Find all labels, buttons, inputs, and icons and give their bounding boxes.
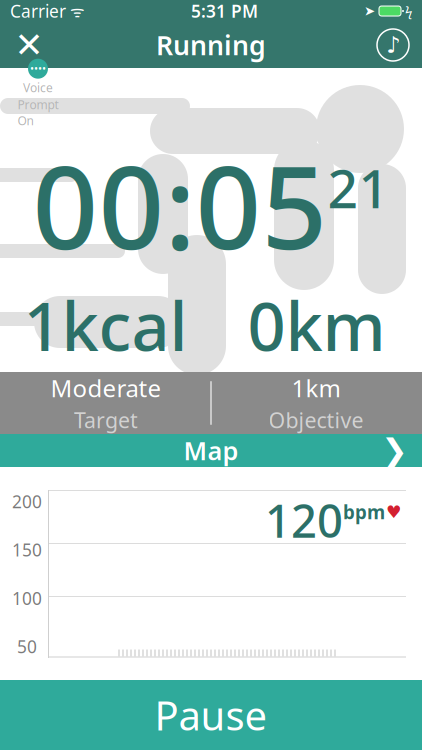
staticText: 200	[12, 490, 42, 513]
button[interactable]: Map	[0, 434, 422, 467]
staticText: ᯤ	[66, 0, 85, 22]
staticText: 150	[12, 538, 42, 561]
staticText: Objective	[268, 406, 363, 434]
staticText: ➤	[364, 3, 375, 18]
staticText: Moderate	[50, 372, 161, 404]
staticText: 00:05	[32, 128, 327, 281]
staticText: 1km	[291, 372, 340, 404]
staticText: ♪	[386, 32, 400, 58]
staticText: bpm	[343, 500, 385, 524]
staticText: Voice	[23, 80, 53, 96]
staticText: 50	[17, 635, 37, 658]
staticText: Running	[156, 27, 266, 63]
staticText: 100	[12, 587, 42, 610]
staticText: 5:31 PM	[191, 0, 258, 22]
staticText: ✕	[14, 25, 43, 65]
staticText: ••••	[30, 62, 46, 76]
staticText: Carrier	[10, 0, 66, 22]
staticText: Pause	[154, 688, 267, 741]
staticText: 1kcal	[23, 281, 187, 369]
staticText: Target	[74, 406, 138, 434]
staticText: ❯	[381, 432, 408, 469]
button[interactable]: Music	[364, 22, 422, 68]
button[interactable]: Pause	[0, 680, 422, 750]
staticText: 0km	[247, 281, 385, 369]
staticText: Map	[183, 434, 238, 467]
staticText: ♥	[386, 502, 402, 522]
staticText: Prompt On	[17, 97, 58, 128]
staticText: 120	[265, 490, 343, 550]
staticText: 21	[327, 152, 389, 223]
button[interactable]: Close	[0, 22, 58, 68]
staticText: ϟ	[405, 2, 412, 20]
